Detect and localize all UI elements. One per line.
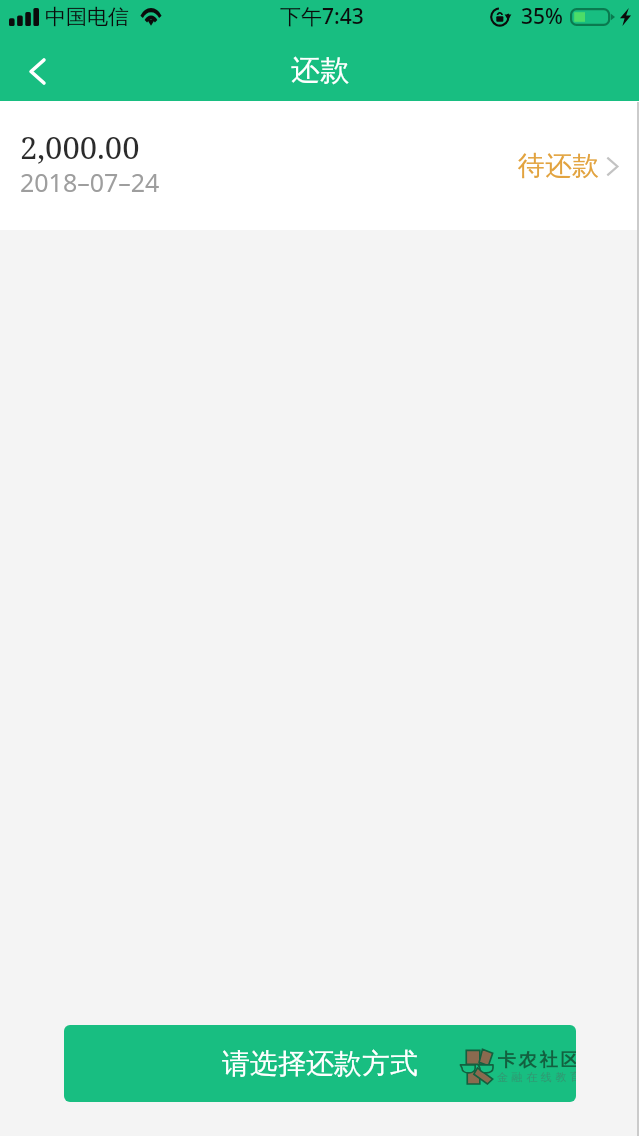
staticText: 还款: [291, 52, 349, 89]
staticText: 待还款: [518, 149, 599, 183]
staticText: 请选择还款方式: [222, 1046, 418, 1081]
staticText: 金融在线教育: [497, 1070, 576, 1084]
button[interactable]: 待还款: [506, 137, 639, 195]
staticText: 中国电信: [45, 4, 129, 30]
staticText: 2,000.00: [20, 126, 140, 168]
button[interactable]: 2,000.00: [0, 101, 639, 230]
staticText: 卡农社区: [496, 1049, 576, 1072]
button[interactable]: Back: [8, 42, 66, 100]
staticText: 2018–07–24: [20, 165, 160, 199]
staticText: 35%: [521, 2, 563, 31]
button[interactable]: 请选择还款方式: [64, 1025, 576, 1102]
staticText: 下午7:43: [280, 2, 364, 31]
